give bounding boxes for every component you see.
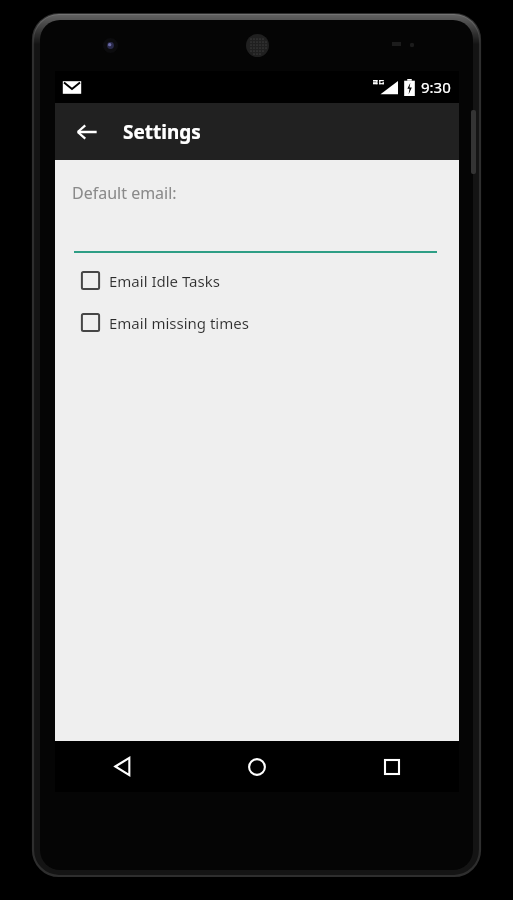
- staticText: Default email:: [72, 182, 177, 204]
- staticText: Settings: [123, 119, 201, 145]
- staticText: Email missing times: [109, 313, 249, 333]
- button[interactable]: Recent apps: [324, 741, 459, 792]
- button[interactable]: Email missing times: [55, 307, 459, 338]
- staticText: 9:30: [421, 77, 451, 97]
- button[interactable]: Home: [189, 741, 324, 792]
- button[interactable]: Navigate up: [65, 110, 109, 154]
- staticText: Email Idle Tasks: [109, 271, 220, 291]
- button[interactable]: Back: [55, 741, 189, 792]
- button[interactable]: Email Idle Tasks: [55, 265, 459, 296]
- button[interactable]: [74, 227, 437, 253]
